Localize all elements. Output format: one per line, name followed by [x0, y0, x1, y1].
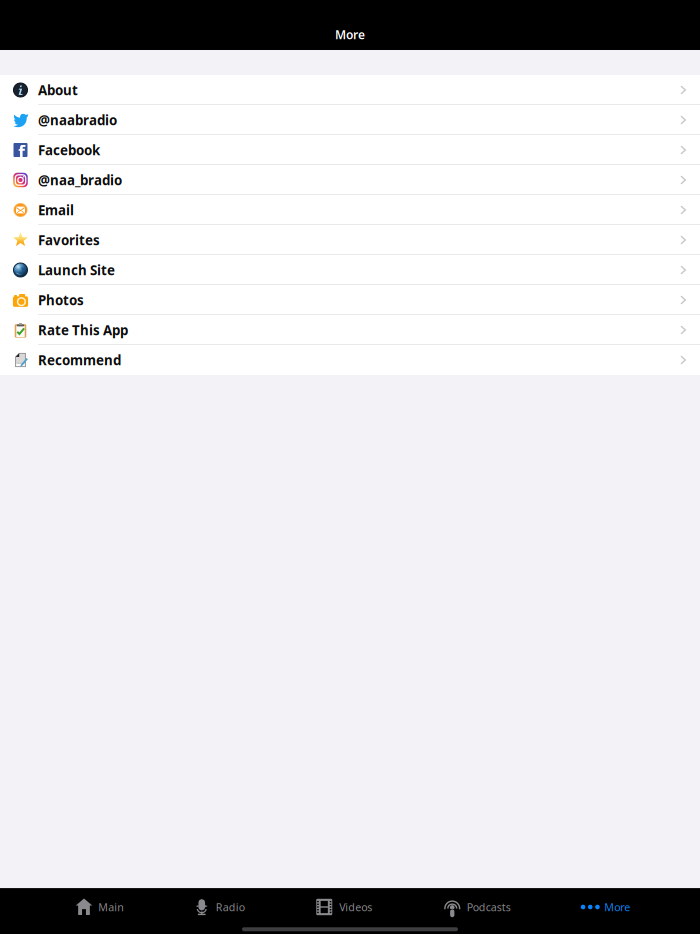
- staticText: Launch Site: [38, 261, 115, 279]
- button[interactable]: Rate This App: [0, 315, 700, 345]
- button[interactable]: @naa_bradio: [0, 165, 700, 195]
- staticText: Favorites: [38, 231, 100, 249]
- staticText: @naabradio: [38, 111, 117, 129]
- staticText: More: [604, 900, 630, 914]
- button[interactable]: Radio: [196, 888, 245, 925]
- button[interactable]: f: [0, 135, 700, 165]
- button[interactable]: Email: [0, 195, 700, 225]
- button[interactable]: Photos: [0, 285, 700, 315]
- staticText: Main: [98, 900, 124, 914]
- button[interactable]: More: [582, 888, 630, 925]
- button[interactable]: Recommend: [0, 345, 700, 375]
- staticText: Rate This App: [38, 321, 128, 339]
- staticText: Photos: [38, 291, 84, 309]
- button[interactable]: Podcasts: [444, 888, 511, 925]
- staticText: About: [38, 81, 78, 99]
- button[interactable]: Favorites: [0, 225, 700, 255]
- button[interactable]: Launch Site: [0, 255, 700, 285]
- staticText: Radio: [216, 900, 245, 914]
- staticText: Facebook: [38, 141, 100, 159]
- staticText: f: [18, 140, 25, 163]
- staticText: More: [335, 26, 365, 42]
- button[interactable]: About: [0, 75, 700, 105]
- staticText: Videos: [339, 900, 372, 914]
- button[interactable]: Videos: [316, 888, 372, 925]
- staticText: Recommend: [38, 351, 121, 369]
- button[interactable]: Main: [76, 888, 124, 925]
- button[interactable]: @naabradio: [0, 105, 700, 135]
- staticText: Email: [38, 201, 74, 219]
- staticText: Podcasts: [467, 900, 511, 914]
- staticText: @naa_bradio: [38, 171, 122, 189]
